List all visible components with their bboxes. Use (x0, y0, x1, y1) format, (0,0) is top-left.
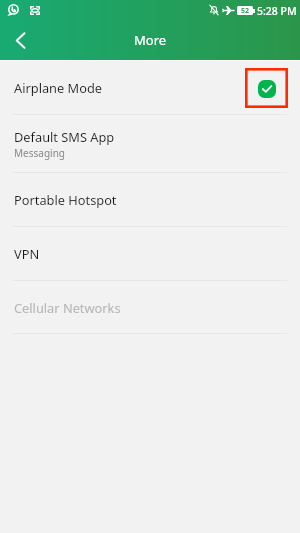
staticText: Default SMS App (14, 128, 115, 145)
button[interactable]: Cellular Networks (0, 281, 300, 333)
button[interactable]: Airplane Mode (0, 61, 300, 114)
staticText: Portable Hotspot (14, 191, 117, 208)
staticText: Messaging (14, 146, 65, 160)
staticText: Airplane Mode (14, 79, 103, 96)
button[interactable]: Back (0, 20, 40, 60)
button[interactable]: Default SMS App (0, 115, 300, 172)
staticText: Cellular Networks (14, 299, 121, 316)
button[interactable]: Airplane mode on (258, 80, 276, 98)
staticText: More (134, 31, 167, 49)
staticText: 5:28 PM (257, 4, 297, 18)
button[interactable]: Portable Hotspot (0, 173, 300, 226)
button[interactable]: VPN (0, 227, 300, 280)
staticText: VPN (14, 245, 40, 262)
staticText: 52 (241, 6, 250, 15)
